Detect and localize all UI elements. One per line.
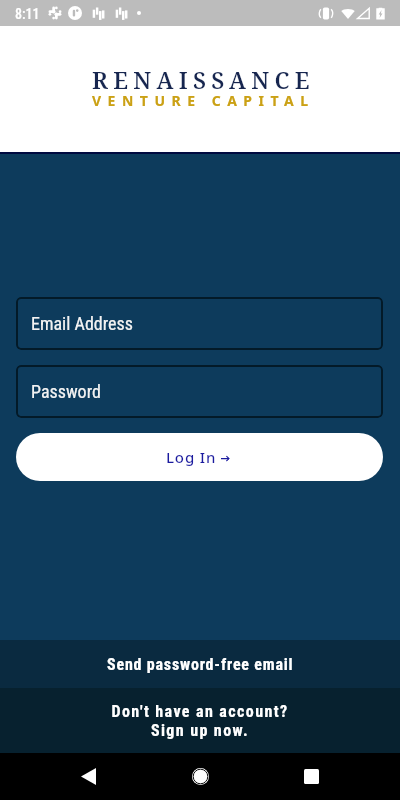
staticText: Send password-free email xyxy=(107,655,294,674)
button[interactable]: Recent apps xyxy=(287,753,335,800)
staticText: Don't have an account? Sign up now. xyxy=(111,702,289,740)
staticText: Log In xyxy=(166,447,217,467)
staticText: RENAISSANCE xyxy=(92,64,315,95)
staticText: Email Address xyxy=(31,313,133,334)
staticText: Password xyxy=(31,381,101,402)
button[interactable]: Home xyxy=(176,753,224,800)
button[interactable]: Back xyxy=(64,753,112,800)
staticText: 8:11 xyxy=(15,6,40,22)
button[interactable]: Log In xyxy=(16,433,383,481)
button[interactable]: Password xyxy=(16,365,383,418)
button[interactable]: Don't have an account? Sign up now. xyxy=(0,688,400,753)
button[interactable]: Email Address xyxy=(16,297,383,350)
button[interactable]: Send password-free email xyxy=(0,640,400,688)
staticText: VENTURE CAPITAL xyxy=(92,91,315,110)
